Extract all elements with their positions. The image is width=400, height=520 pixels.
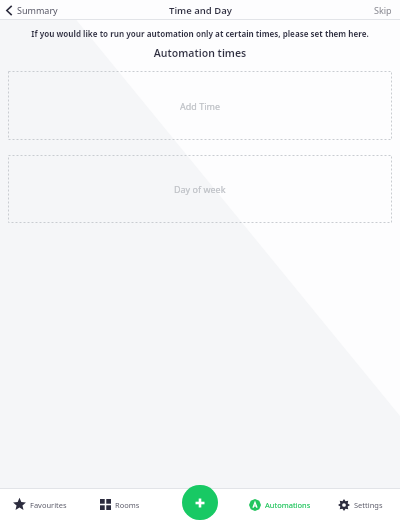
button[interactable]: Automations: [240, 489, 320, 520]
button[interactable]: Day of week: [8, 155, 392, 223]
staticText: Add Time: [180, 100, 220, 112]
staticText: Rooms: [115, 500, 140, 510]
button[interactable]: Settings: [320, 489, 400, 520]
button[interactable]: Rooms: [80, 489, 160, 520]
staticText: Automations: [265, 500, 311, 510]
staticText: Time and Day: [169, 4, 232, 17]
button[interactable]: Summary: [0, 2, 66, 18]
button[interactable]: Add Time: [8, 71, 392, 140]
staticText: Automation times: [0, 46, 400, 60]
staticText: Favourites: [30, 500, 67, 510]
staticText: If you would like to run your automation…: [16, 28, 384, 39]
staticText: Settings: [354, 500, 383, 510]
button[interactable]: Skip: [366, 2, 400, 18]
button[interactable]: Favourites: [0, 489, 80, 520]
staticText: Skip: [374, 4, 392, 16]
button[interactable]: Add automation: [182, 485, 218, 520]
staticText: Summary: [17, 4, 58, 16]
staticText: Day of week: [174, 183, 226, 195]
